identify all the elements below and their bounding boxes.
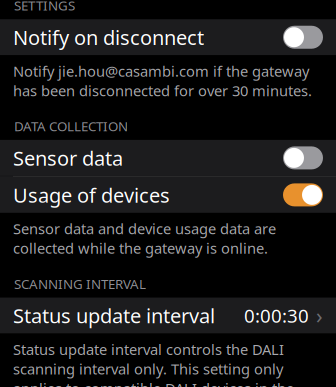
staticText: SETTINGS (14, 0, 75, 14)
staticText: Status update interval controls the DALI… (13, 340, 294, 387)
button[interactable]: Sensor data (0, 140, 336, 176)
staticText: 0:00:30 (244, 303, 309, 328)
staticText: Usage of devices (13, 182, 170, 208)
staticText: Sensor data and device usage data are co… (13, 219, 276, 258)
staticText: Notify on disconnect (13, 24, 204, 51)
staticText: SCANNING INTERVAL (14, 275, 146, 293)
button[interactable]: Usage of devices (0, 177, 336, 213)
button[interactable]: Status update interval (0, 298, 336, 334)
staticText: DATA COLLECTION (14, 117, 128, 135)
staticText: › (316, 301, 323, 330)
button[interactable]: Notify on disconnect (0, 19, 336, 55)
staticText: Notify jie.hou@casambi.com if the gatewa… (13, 61, 312, 100)
staticText: Sensor data (13, 145, 123, 171)
staticText: Status update interval (13, 302, 215, 329)
